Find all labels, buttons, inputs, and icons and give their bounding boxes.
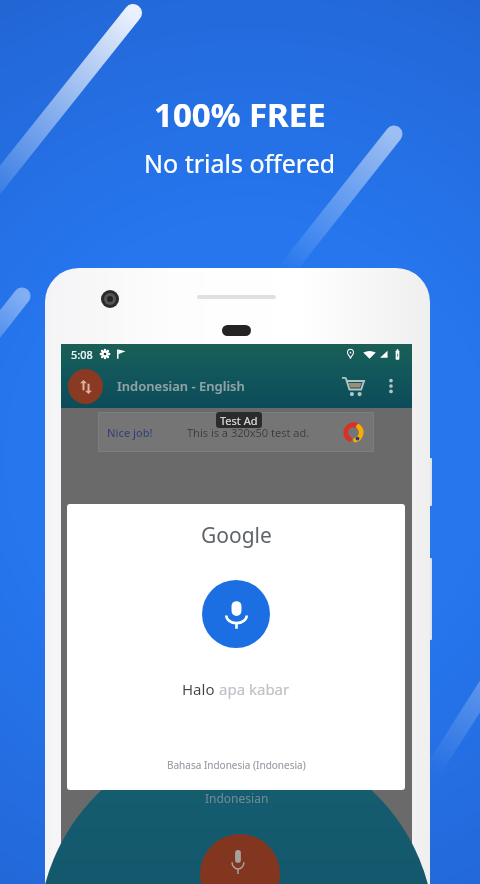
staticText: 5:08 <box>71 347 93 362</box>
button[interactable]: Swap languages <box>68 369 103 404</box>
staticText: Indonesian - English <box>117 377 245 395</box>
button[interactable]: Shopping cart <box>336 369 370 403</box>
button[interactable]: Microphone <box>202 580 270 648</box>
button[interactable]: Speak <box>200 834 280 884</box>
staticText: Halo <box>182 679 219 699</box>
staticText: Indonesian <box>205 790 269 806</box>
staticText: This is a 320x50 test ad. <box>187 425 310 440</box>
staticText: apa kabar <box>219 679 290 699</box>
staticText: 100% FREE <box>154 92 326 137</box>
staticText: Test Ad <box>220 413 258 428</box>
staticText: Bahasa Indonesia (Indonesia) <box>167 758 306 772</box>
staticText: Google <box>201 521 272 550</box>
button[interactable]: More options <box>379 374 403 398</box>
staticText: Nice job! <box>107 425 153 440</box>
staticText: No trials offered <box>144 146 336 180</box>
